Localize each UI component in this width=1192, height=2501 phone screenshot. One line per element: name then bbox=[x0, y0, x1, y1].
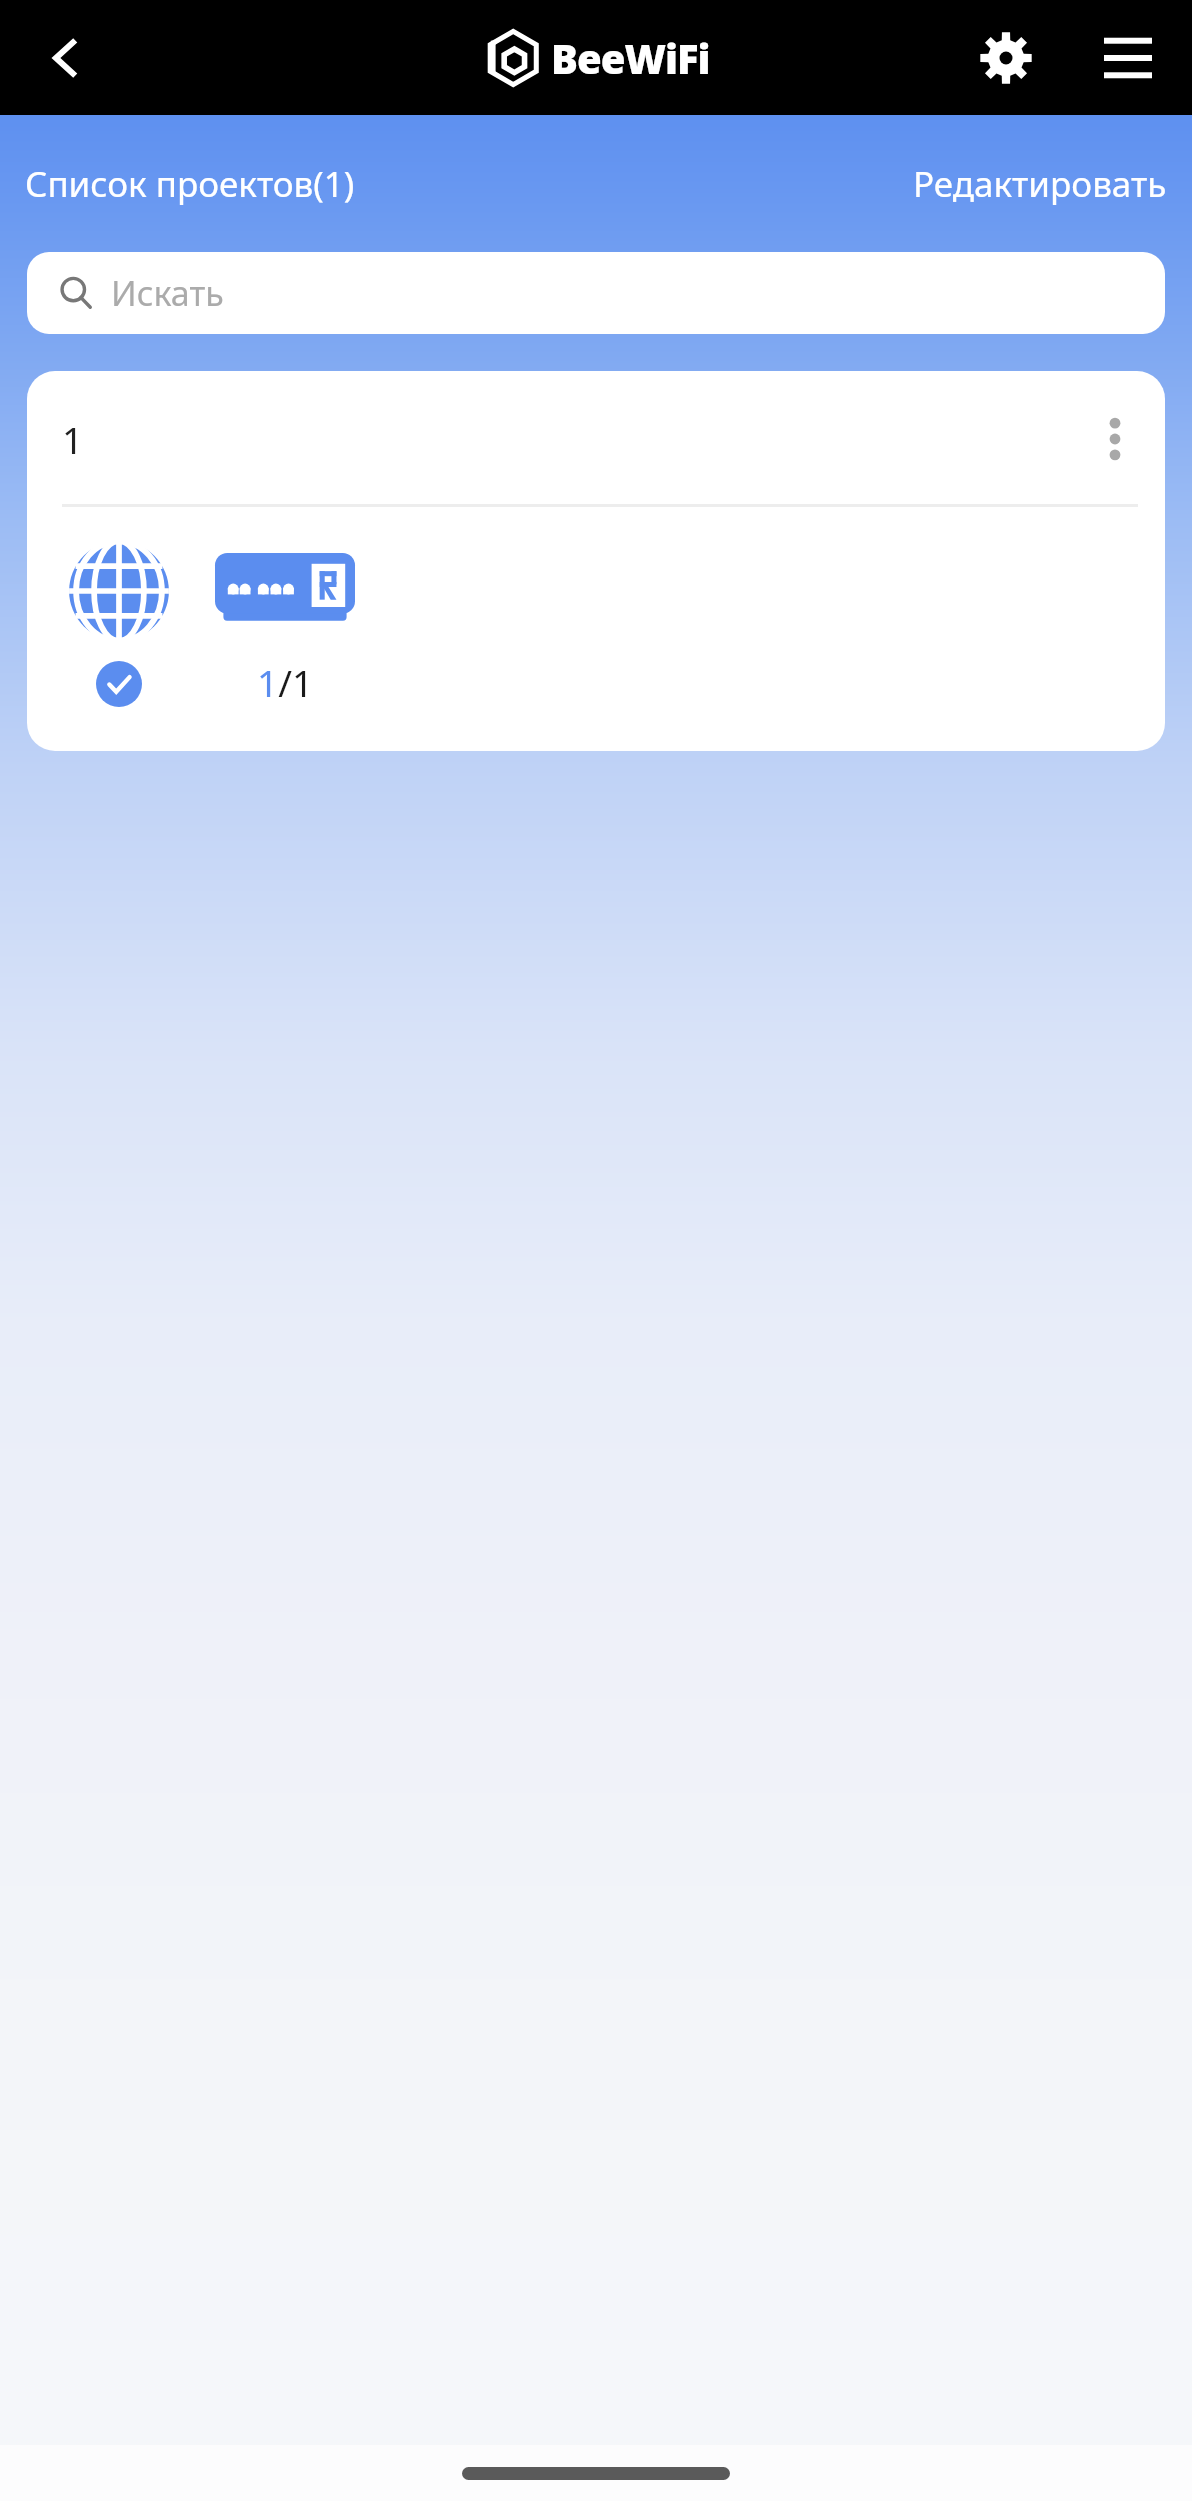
staticText: 1/1 bbox=[257, 657, 314, 707]
button[interactable]: Редактировать bbox=[896, 148, 1184, 220]
button[interactable]: Settings bbox=[966, 18, 1046, 98]
button[interactable]: 1 bbox=[27, 371, 1165, 751]
button[interactable]: More options bbox=[1081, 405, 1149, 473]
button[interactable]: Искать bbox=[27, 252, 1165, 334]
staticText: BeeWiFi bbox=[551, 31, 710, 85]
button[interactable]: Back bbox=[24, 16, 108, 100]
button[interactable]: Список проектов(1) bbox=[8, 148, 372, 220]
staticText: Редактировать bbox=[913, 160, 1167, 208]
staticText: 1 bbox=[62, 414, 84, 464]
staticText: Искать bbox=[111, 270, 224, 316]
staticText: Список проектов(1) bbox=[25, 160, 355, 208]
button[interactable]: Menu bbox=[1088, 18, 1168, 98]
